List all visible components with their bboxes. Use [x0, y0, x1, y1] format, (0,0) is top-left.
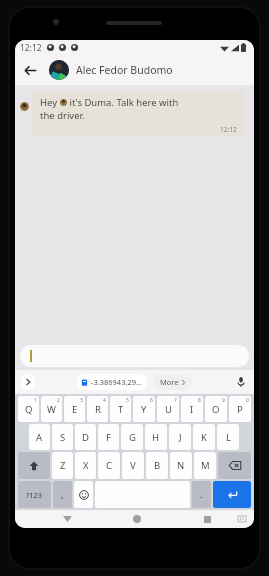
button[interactable]: W [41, 396, 62, 422]
button[interactable]: C [98, 452, 120, 479]
button[interactable]: Comma [53, 481, 72, 508]
button[interactable]: J [169, 424, 191, 450]
staticText: the driver. [40, 109, 85, 122]
button[interactable]: Back [15, 55, 45, 85]
button[interactable]: R [87, 396, 108, 422]
staticText: 4 [103, 397, 106, 404]
staticText: P [237, 403, 243, 416]
staticText: 8 [198, 397, 201, 404]
button[interactable]: Z [52, 452, 73, 479]
button[interactable]: Home [129, 511, 145, 527]
button[interactable]: Voice input [233, 374, 249, 390]
staticText: 5 [126, 397, 129, 404]
button[interactable]: L [217, 424, 239, 450]
button[interactable]: Expand [20, 374, 36, 390]
button[interactable]: Q [18, 396, 39, 422]
staticText: K [201, 431, 207, 444]
staticText: Hey [40, 96, 60, 109]
button[interactable]: Symbols [18, 481, 51, 508]
button[interactable]: -3.386943,29… [76, 374, 147, 390]
staticText: M [201, 459, 210, 472]
button[interactable]: Hide keyboard [59, 511, 75, 527]
staticText: L [226, 431, 231, 444]
staticText: 2 [57, 397, 60, 404]
button[interactable]: S [52, 424, 73, 450]
button[interactable]: G [121, 424, 143, 450]
staticText: V [130, 459, 136, 472]
staticText: R [95, 403, 101, 416]
staticText: G [129, 431, 136, 444]
button[interactable]: D [75, 424, 96, 450]
button[interactable]: X [75, 452, 96, 479]
button[interactable]: I [181, 396, 203, 422]
staticText: Z [60, 459, 66, 472]
staticText: 0 [246, 397, 249, 404]
staticText: W [47, 403, 56, 416]
staticText: T [118, 403, 124, 416]
staticText: I [190, 403, 194, 416]
staticText: Alec Fedor Budomo [76, 63, 173, 77]
button[interactable]: Backspace [218, 452, 251, 479]
button[interactable]: B [146, 452, 168, 479]
staticText: , [61, 488, 64, 501]
button[interactable]: Enter [213, 481, 251, 508]
staticText: 12:12 [220, 125, 237, 134]
button[interactable]: F [98, 424, 119, 450]
staticText: it's Duma. Talk here with [67, 96, 179, 109]
staticText: 9 [222, 397, 225, 404]
button[interactable]: Period [192, 481, 211, 508]
staticText: 1 [34, 397, 37, 404]
staticText: B [154, 459, 161, 472]
button[interactable]: V [122, 452, 144, 479]
staticText: A [36, 431, 43, 444]
staticText: C [106, 459, 113, 472]
button[interactable]: Alec Fedor Budomo [76, 63, 254, 77]
staticText: F [106, 431, 111, 444]
staticText: 6 [150, 397, 153, 404]
staticText: ?123 [26, 490, 43, 500]
button[interactable]: More [154, 374, 192, 390]
staticText: O [212, 403, 220, 416]
staticText: J [179, 431, 182, 444]
button[interactable]: K [193, 424, 215, 450]
button[interactable]: P [229, 396, 251, 422]
staticText: 7 [174, 397, 177, 404]
button[interactable]: U [157, 396, 179, 422]
button[interactable]: E [64, 396, 85, 422]
staticText: Y [141, 403, 147, 416]
staticText: Q [25, 403, 33, 416]
button[interactable]: Recents [199, 511, 215, 527]
button[interactable]: M [194, 452, 216, 479]
button[interactable]: N [170, 452, 192, 479]
button[interactable]: Switch input method [235, 512, 249, 526]
button[interactable]: Y [133, 396, 155, 422]
staticText: H [152, 431, 160, 444]
button[interactable]: Message input [20, 345, 249, 367]
button[interactable]: H [145, 424, 167, 450]
staticText: X [83, 459, 89, 472]
button[interactable]: Hey [33, 91, 244, 137]
button[interactable]: Emoji [74, 481, 93, 508]
staticText: D [82, 431, 89, 444]
staticText: E [72, 403, 78, 416]
staticText: N [177, 459, 185, 472]
button[interactable]: A [29, 424, 50, 450]
button[interactable]: O [205, 396, 227, 422]
staticText: More [160, 377, 179, 387]
staticText: . [200, 488, 203, 501]
button[interactable]: Shift [18, 452, 50, 479]
staticText: 12:12 [20, 42, 42, 54]
button[interactable]: Contact avatar [49, 60, 69, 80]
staticText: -3.386943,29… [91, 377, 142, 387]
staticText: S [60, 431, 66, 444]
staticText: U [165, 403, 172, 416]
staticText: 3 [80, 397, 83, 404]
button[interactable]: T [110, 396, 131, 422]
